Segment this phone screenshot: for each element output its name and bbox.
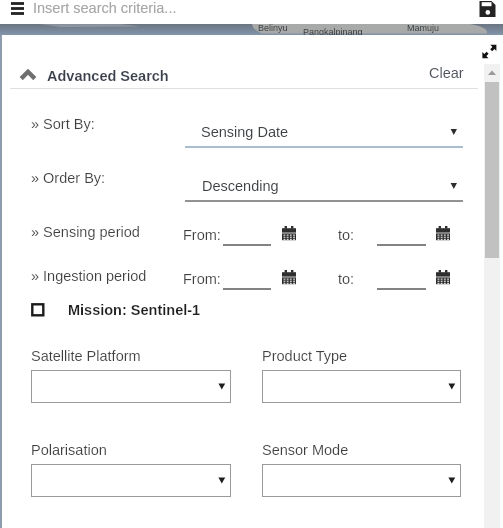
staticText: » Order By: xyxy=(31,170,106,186)
button[interactable]: Scroll up xyxy=(484,64,500,82)
staticText: Product Type xyxy=(262,348,348,364)
button[interactable] xyxy=(262,464,461,497)
staticText: to: xyxy=(338,227,355,243)
staticText: » Sort By: xyxy=(31,116,95,132)
staticText: to: xyxy=(338,271,355,287)
button[interactable] xyxy=(223,269,271,290)
button[interactable] xyxy=(31,370,231,403)
staticText: » Sensing period xyxy=(31,224,140,240)
button[interactable]: Descending xyxy=(185,175,463,202)
staticText: Sensor Mode xyxy=(262,442,349,458)
button[interactable]: Pick to date xyxy=(436,226,450,240)
staticText: Mission: Sentinel-1 xyxy=(68,302,201,318)
staticText: » Ingestion period xyxy=(31,268,147,284)
staticText: Clear xyxy=(429,65,464,81)
staticText: Polarisation xyxy=(31,442,107,458)
staticText: Insert search criteria... xyxy=(33,0,177,16)
button[interactable]: Pick to date xyxy=(436,270,450,284)
staticText: Advanced Search xyxy=(47,68,169,84)
staticText: Descending xyxy=(202,178,279,194)
staticText: From: xyxy=(183,227,221,243)
staticText: Sensing Date xyxy=(201,124,289,140)
button[interactable]: Advanced Search xyxy=(19,64,189,92)
button[interactable]: Expand xyxy=(481,43,498,60)
staticText: From: xyxy=(183,271,221,287)
button[interactable]: Clear xyxy=(424,64,468,88)
button[interactable]: Pick from date xyxy=(282,226,296,240)
button[interactable]: Sensing Date xyxy=(185,121,463,148)
button[interactable]: Mission: Sentinel-1 xyxy=(26,299,206,323)
button[interactable]: Save xyxy=(474,0,498,24)
staticText: Belinyu xyxy=(258,23,288,33)
button[interactable] xyxy=(377,269,426,290)
staticText: Satellite Platform xyxy=(31,348,141,364)
button[interactable] xyxy=(377,225,426,246)
button[interactable]: Pick from date xyxy=(282,270,296,284)
button[interactable]: Menu xyxy=(4,0,32,24)
staticText: Mamuju xyxy=(407,23,440,33)
button[interactable] xyxy=(262,370,461,403)
staticText: Pangkalpinang xyxy=(303,27,363,37)
button[interactable] xyxy=(223,225,271,246)
button[interactable] xyxy=(31,464,231,497)
